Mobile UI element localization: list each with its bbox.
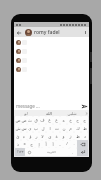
- button[interactable]: ش: [15, 124, 21, 132]
- button[interactable]: Backspace: [77, 140, 88, 148]
- staticText: أ: [45, 142, 47, 147]
- staticText: .: [72, 150, 74, 155]
- button[interactable]: ر: [33, 132, 39, 140]
- button[interactable]: آ: [49, 140, 56, 148]
- staticText: ئ: [16, 134, 20, 139]
- staticText: ى: [48, 134, 52, 139]
- button[interactable]: ك: [74, 124, 81, 132]
- staticText: ح: [76, 118, 79, 123]
- button[interactable]: x: [21, 140, 28, 148]
- staticText: ق: [34, 118, 38, 123]
- staticText: شلبي: [67, 111, 77, 116]
- button[interactable]: س: [21, 124, 27, 132]
- button[interactable]: الله: [37, 110, 60, 116]
- button[interactable]: لو: [14, 110, 37, 116]
- button[interactable]: Space: [33, 148, 69, 156]
- button[interactable]: ا: [46, 124, 53, 132]
- staticText: و: [62, 134, 65, 139]
- button[interactable]: أ: [42, 140, 49, 148]
- staticText: س: [21, 126, 27, 131]
- button[interactable]: خ: [67, 116, 74, 124]
- staticText: ض: [15, 118, 21, 123]
- staticText: إ: [38, 142, 40, 147]
- staticText: ظ: [76, 134, 80, 139]
- staticText: غ: [48, 118, 51, 123]
- button[interactable]: غ: [46, 116, 53, 124]
- staticText: ط: [83, 126, 87, 131]
- staticText: ذ: [17, 142, 19, 147]
- button[interactable]: .: [69, 148, 77, 156]
- button[interactable]: و: [60, 132, 67, 140]
- button[interactable]: Back: [14, 28, 23, 37]
- staticText: ع: [55, 118, 58, 123]
- button[interactable]: شلبي: [60, 110, 83, 116]
- button[interactable]: ي: [27, 124, 33, 132]
- staticText: ص: [21, 118, 27, 123]
- staticText: ك: [76, 126, 80, 131]
- button[interactable]: ئ: [15, 132, 21, 140]
- staticText: ج: [30, 142, 33, 147]
- button[interactable]: م: [67, 124, 74, 132]
- staticText: ش: [15, 126, 21, 131]
- button[interactable]: ط: [81, 124, 88, 132]
- button[interactable]: message ...: [16, 102, 80, 110]
- button[interactable]: ت: [53, 124, 60, 132]
- button[interactable]: Send: [80, 102, 88, 110]
- button[interactable]: لا: [39, 132, 46, 140]
- button[interactable]: ج: [81, 116, 88, 124]
- button[interactable]: ى: [46, 132, 53, 140]
- button[interactable]: ج: [28, 140, 35, 148]
- button[interactable]: [14, 56, 89, 65]
- staticText: ث: [28, 118, 32, 123]
- button[interactable]: /: [63, 140, 70, 148]
- staticText: .: [73, 141, 75, 147]
- staticText: ه: [62, 118, 65, 123]
- staticText: ف: [40, 118, 45, 123]
- staticText: ا: [49, 126, 51, 131]
- staticText: ء: [23, 134, 25, 139]
- staticText: message ...: [16, 103, 40, 109]
- button[interactable]: ء: [21, 132, 27, 140]
- button[interactable]: ح: [74, 116, 81, 124]
- staticText: ة: [55, 134, 58, 139]
- button[interactable]: ث: [27, 116, 33, 124]
- button[interactable]: ة: [53, 132, 60, 140]
- button[interactable]: ع: [53, 116, 60, 124]
- button[interactable]: Emoji: [25, 148, 33, 156]
- button[interactable]: ص: [21, 116, 27, 124]
- button[interactable]: ب: [33, 124, 39, 132]
- staticText: ز: [69, 134, 72, 139]
- button[interactable]: Enter: [77, 148, 88, 156]
- button[interactable]: ن: [60, 124, 67, 132]
- staticText: romy fadel: [34, 29, 60, 36]
- button[interactable]: [14, 38, 89, 47]
- button[interactable]: More suggestions: [83, 110, 89, 116]
- staticText: ج: [83, 118, 86, 123]
- button[interactable]: ،: [56, 140, 63, 148]
- staticText: لو: [24, 111, 28, 116]
- staticText: م: [69, 126, 72, 131]
- button[interactable]: ز: [67, 132, 74, 140]
- button[interactable]: ه: [60, 116, 67, 124]
- button[interactable]: ل: [39, 124, 46, 132]
- staticText: العربية: [47, 150, 56, 154]
- button[interactable]: More options: [82, 27, 89, 37]
- staticText: ر: [35, 134, 38, 139]
- staticText: ن: [62, 126, 66, 131]
- staticText: ؤ: [29, 134, 32, 139]
- button[interactable]: ?١٢٣: [15, 148, 25, 156]
- button[interactable]: [14, 65, 89, 74]
- staticText: خ: [69, 118, 72, 123]
- button[interactable]: د: [81, 132, 88, 140]
- button[interactable]: ق: [33, 116, 39, 124]
- button[interactable]: ذ: [15, 140, 21, 148]
- staticText: ت: [55, 126, 59, 131]
- button[interactable]: ظ: [74, 132, 81, 140]
- button[interactable]: إ: [35, 140, 42, 148]
- button[interactable]: [14, 47, 89, 56]
- staticText: /: [66, 141, 68, 147]
- button[interactable]: ض: [15, 116, 21, 124]
- button[interactable]: ؤ: [27, 132, 33, 140]
- button[interactable]: ف: [39, 116, 46, 124]
